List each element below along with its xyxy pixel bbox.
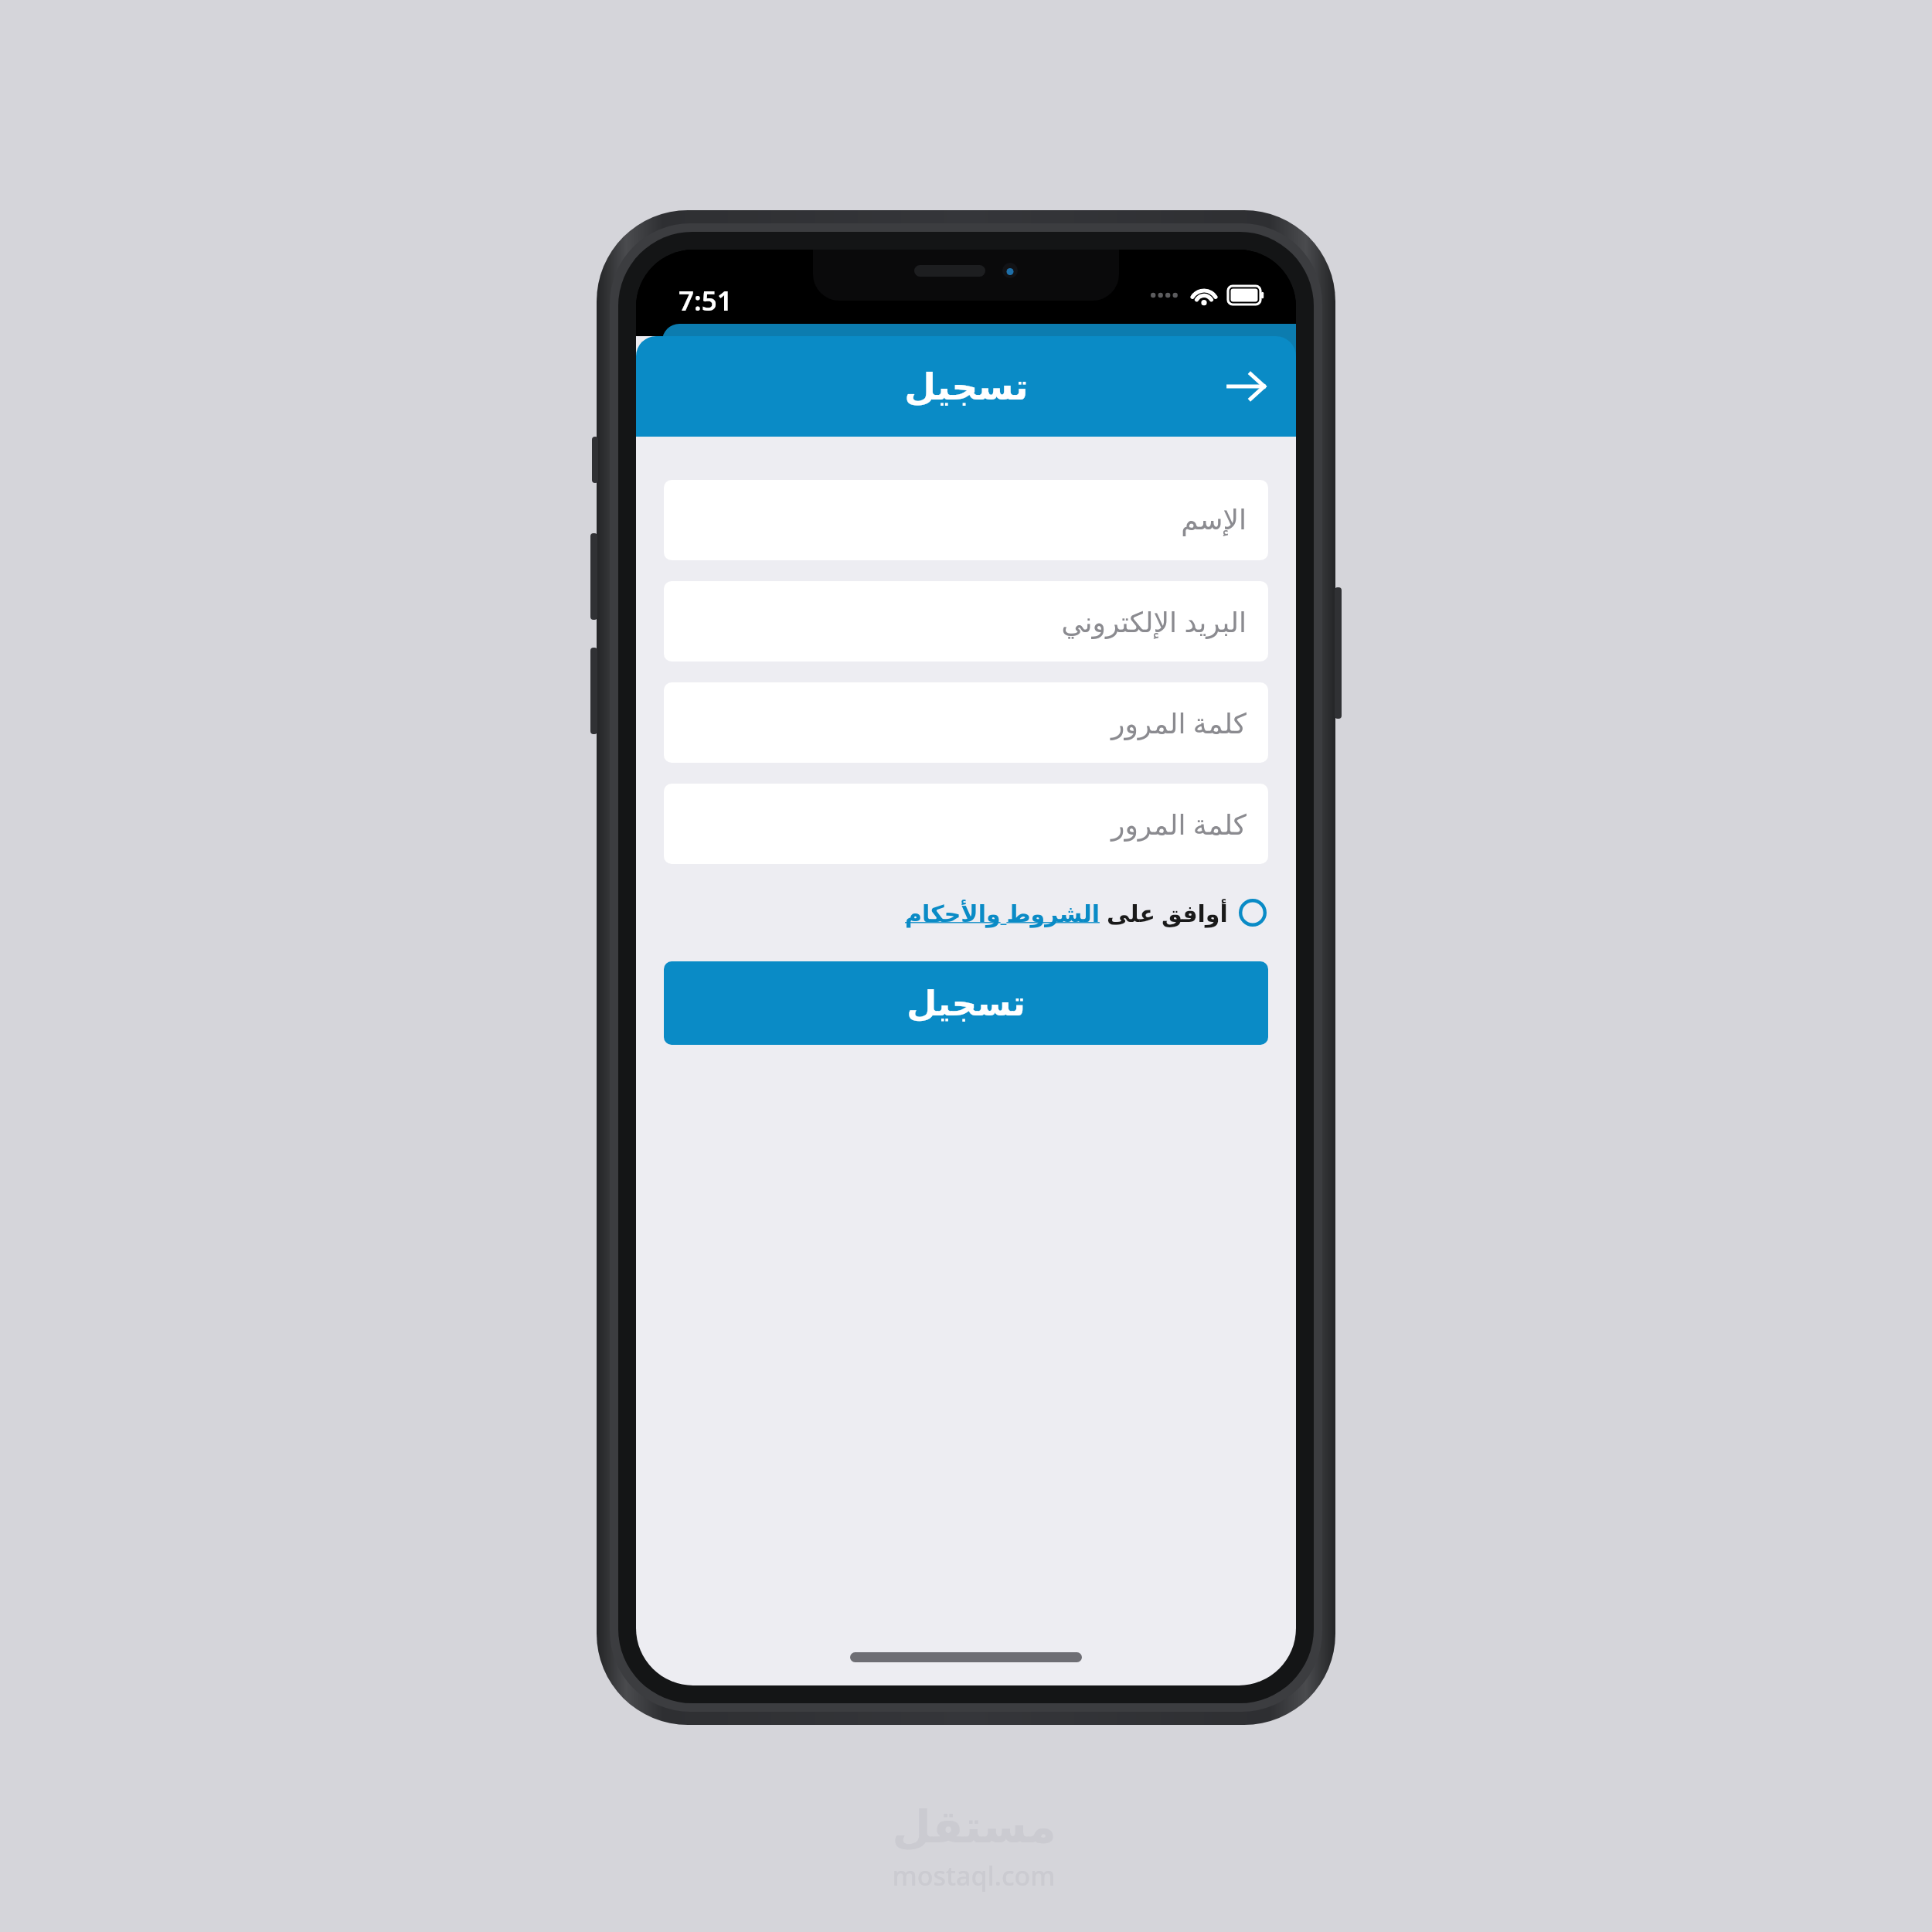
staticText: الإسم (1181, 504, 1247, 536)
button[interactable]: كلمة المرور (664, 784, 1268, 864)
staticText: تسجيل (906, 983, 1026, 1023)
staticText: البريد الإلكتروني (1061, 603, 1247, 641)
button[interactable]: الشروط والأحكام (636, 884, 1267, 941)
staticText: mostaql.com (892, 1858, 1056, 1893)
staticText: أوافق على (1107, 897, 1228, 929)
staticText: كلمة المرور (1111, 704, 1247, 742)
staticText: مستقل (892, 1801, 1056, 1853)
button[interactable]: الإسم (664, 480, 1268, 560)
staticText: الشروط والأحكام (905, 897, 1100, 929)
staticText: 7:51 (679, 282, 733, 319)
button[interactable]: تسجيل (664, 961, 1268, 1045)
button[interactable]: البريد الإلكتروني (664, 581, 1268, 662)
button[interactable]: كلمة المرور (664, 682, 1268, 763)
staticText: تسجيل (904, 366, 1029, 408)
staticText: كلمة المرور (1111, 805, 1247, 843)
button[interactable]: التالي (1214, 354, 1279, 419)
